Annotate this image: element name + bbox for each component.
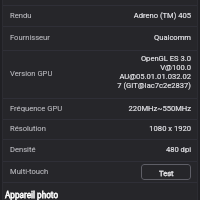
button[interactable]: Résolution: [0, 120, 200, 139]
staticText: 480 dpi: [165, 145, 191, 154]
staticText: 1080 x 1920: [149, 124, 191, 133]
staticText: AU@05.01.01.032.02: [119, 72, 191, 81]
staticText: Multi-touch: [10, 167, 49, 176]
staticText: Test: [159, 169, 174, 178]
staticText: Rendu: [10, 11, 32, 20]
staticText: V@100.0: [160, 63, 191, 72]
staticText: Version GPU: [10, 69, 53, 78]
staticText: Résolution: [10, 124, 46, 133]
button[interactable]: Fréquence GPU: [0, 99, 200, 119]
staticText: Adreno (TM) 405: [133, 11, 191, 20]
staticText: Qualcomm: [153, 33, 191, 42]
staticText: 220MHz~550MHz: [128, 104, 191, 113]
button[interactable]: Rendu: [0, 6, 200, 26]
staticText: OpenGL ES 3.0: [140, 54, 191, 63]
button[interactable]: Test: [141, 164, 191, 180]
staticText: Densité: [10, 145, 36, 154]
button[interactable]: Densité: [0, 140, 200, 161]
button[interactable]: Version GPU: [0, 51, 200, 98]
staticText: Fréquence GPU: [10, 104, 63, 113]
button[interactable]: Fournisseur: [0, 27, 200, 50]
staticText: Fournisseur: [10, 33, 50, 42]
staticText: 7 (GIT@Iac7c2e2837): [117, 81, 191, 90]
staticText: Appareil photo: [5, 190, 59, 200]
button[interactable]: Appareil photo: [0, 183, 200, 200]
